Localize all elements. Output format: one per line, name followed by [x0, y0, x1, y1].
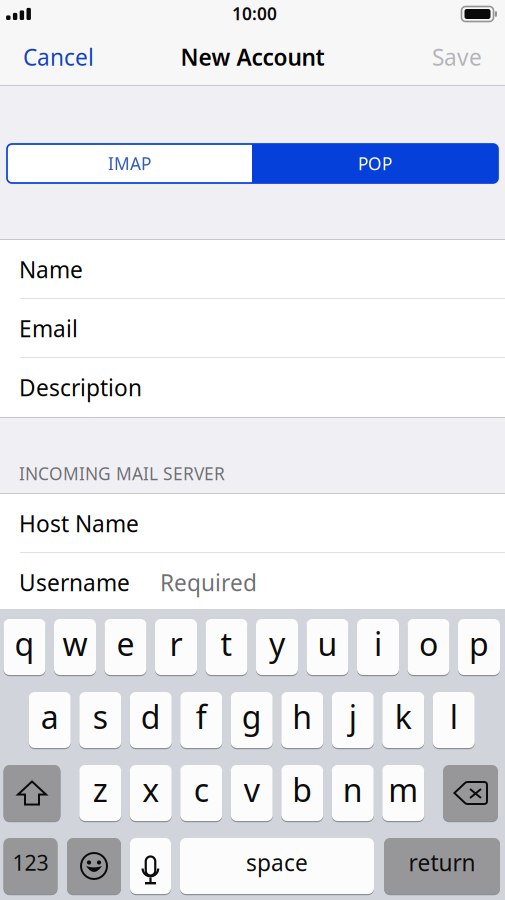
button[interactable]: l	[433, 691, 475, 749]
button[interactable]: Description	[0, 358, 505, 417]
staticText: 10:00	[232, 2, 277, 25]
button[interactable]: g	[231, 691, 273, 749]
button[interactable]: j	[332, 691, 374, 749]
staticText: q	[14, 622, 34, 665]
staticText: s	[93, 695, 108, 738]
staticText: return	[408, 847, 475, 877]
button[interactable]: e	[104, 618, 146, 676]
staticText: m	[388, 768, 418, 811]
staticText: Description	[19, 372, 142, 402]
staticText: Name	[19, 254, 83, 284]
button[interactable]: x	[130, 764, 172, 822]
button[interactable]: m	[382, 764, 424, 822]
button[interactable]: Username	[0, 553, 505, 612]
button[interactable]: Dictate	[130, 837, 171, 895]
button[interactable]: return	[384, 837, 500, 895]
button[interactable]: Cancel	[10, 32, 107, 82]
staticText: k	[395, 695, 412, 738]
button[interactable]: o	[407, 618, 449, 676]
staticText: z	[93, 768, 108, 811]
button[interactable]: i	[357, 618, 399, 676]
button[interactable]: Name	[0, 240, 505, 299]
staticText: IMAP	[108, 152, 151, 175]
staticText: n	[343, 768, 363, 811]
button[interactable]: a	[29, 691, 71, 749]
button[interactable]: z	[79, 764, 121, 822]
button[interactable]: c	[180, 764, 222, 822]
staticText: New Account	[180, 42, 324, 72]
button[interactable]: Email	[0, 299, 505, 358]
staticText: Save	[432, 42, 482, 72]
staticText: j	[349, 695, 357, 738]
button[interactable]: b	[281, 764, 323, 822]
button[interactable]: Delete	[443, 764, 498, 822]
button[interactable]: Emoji	[67, 837, 121, 895]
button[interactable]: n	[332, 764, 374, 822]
staticText: 123	[12, 848, 48, 877]
button[interactable]: h	[281, 691, 323, 749]
staticText: l	[450, 695, 458, 738]
staticText: b	[292, 768, 312, 811]
staticText: i	[374, 622, 382, 665]
button[interactable]: Shift	[3, 764, 60, 822]
button[interactable]: IMAP	[7, 144, 252, 183]
staticText: w	[62, 622, 87, 665]
staticText: e	[116, 622, 134, 665]
button[interactable]: y	[256, 618, 298, 676]
staticText: Host Name	[19, 508, 139, 538]
button[interactable]: p	[458, 618, 500, 676]
staticText: v	[244, 768, 260, 811]
staticText: f	[196, 695, 207, 738]
staticText: space	[246, 847, 308, 877]
button[interactable]: s	[79, 691, 121, 749]
staticText: c	[194, 768, 209, 811]
staticText: Email	[19, 313, 78, 343]
staticText: INCOMING MAIL SERVER	[19, 462, 225, 485]
button[interactable]: t	[205, 618, 247, 676]
button[interactable]: 123	[3, 837, 57, 895]
staticText: t	[220, 622, 232, 665]
staticText: Username	[19, 567, 130, 597]
staticText: o	[419, 622, 438, 665]
staticText: r	[169, 622, 182, 665]
staticText: Cancel	[23, 42, 94, 72]
button[interactable]: r	[155, 618, 197, 676]
staticText: y	[269, 622, 285, 665]
button[interactable]: u	[306, 618, 348, 676]
staticText: Required	[160, 567, 257, 597]
staticText: d	[141, 695, 161, 738]
button[interactable]: v	[231, 764, 273, 822]
staticText: p	[469, 622, 489, 665]
staticText: h	[292, 695, 312, 738]
button[interactable]: w	[54, 618, 96, 676]
staticText: POP	[358, 152, 392, 175]
button[interactable]: d	[130, 691, 172, 749]
staticText: u	[317, 622, 337, 665]
button[interactable]: space	[180, 837, 374, 895]
button[interactable]: q	[3, 618, 45, 676]
button[interactable]: POP	[252, 144, 498, 183]
button[interactable]: Save	[419, 32, 495, 82]
staticText: x	[142, 768, 159, 811]
staticText: g	[242, 695, 262, 738]
staticText: a	[41, 695, 59, 738]
button[interactable]: f	[180, 691, 222, 749]
button[interactable]: k	[382, 691, 424, 749]
button[interactable]: Host Name	[0, 494, 505, 553]
